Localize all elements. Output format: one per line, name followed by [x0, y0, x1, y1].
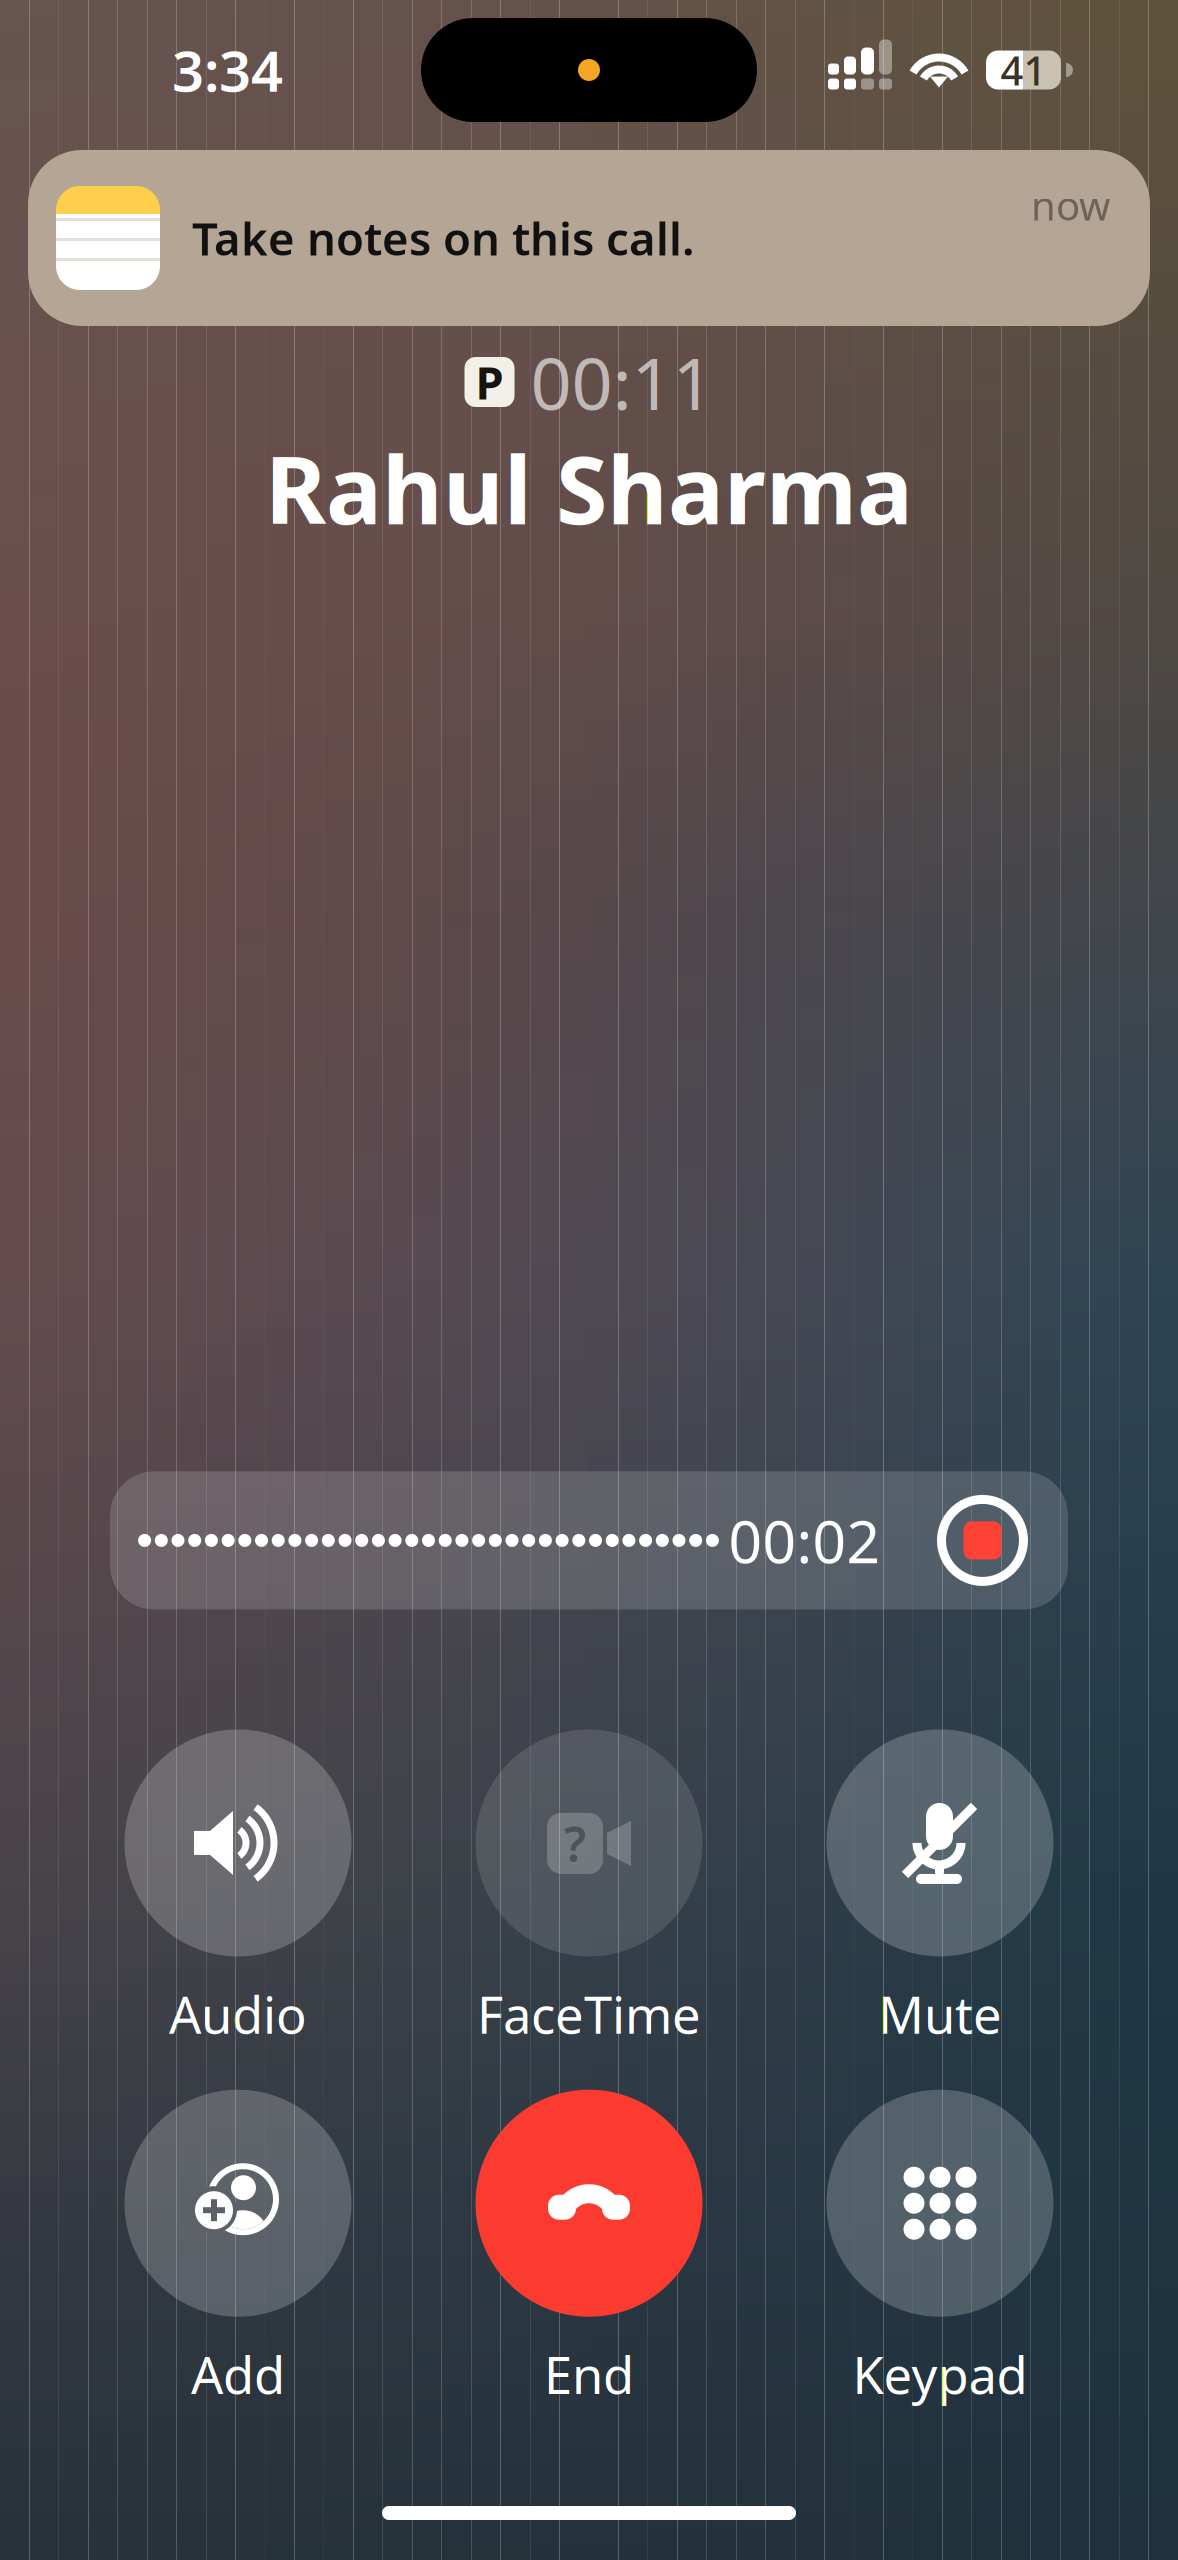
button[interactable]: End [437, 2090, 740, 2408]
button[interactable]: Audio [86, 1729, 389, 2048]
button[interactable]: Stop recording [936, 1494, 1028, 1586]
staticText: ? [564, 1812, 586, 1875]
button[interactable]: Add [86, 2090, 389, 2408]
button[interactable]: Take notes on this call. [28, 150, 1150, 326]
button[interactable]: Keypad [788, 2090, 1091, 2408]
staticText: now [1031, 178, 1110, 231]
staticText: 3:34 [172, 33, 283, 107]
staticText: Add [191, 2341, 285, 2408]
staticText: Keypad [852, 2341, 1027, 2408]
staticText: 41 [1000, 43, 1046, 96]
staticText: FaceTime [477, 1980, 701, 2048]
staticText: 00:11 [530, 334, 713, 430]
staticText: Audio [169, 1980, 307, 2048]
staticText: End [544, 2341, 634, 2408]
staticText: Rahul Sharma [265, 426, 913, 550]
button[interactable]: Mute [788, 1729, 1091, 2048]
staticText: Mute [878, 1980, 1002, 2048]
staticText: P [475, 352, 503, 412]
staticText: Take notes on this call. [192, 208, 695, 268]
button[interactable]: ? [437, 1729, 740, 2048]
staticText: 00:02 [728, 1501, 880, 1579]
